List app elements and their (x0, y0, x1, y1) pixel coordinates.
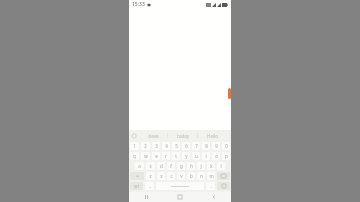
button[interactable]: q (130, 152, 139, 160)
staticText: y (185, 153, 188, 159)
button[interactable]: f (167, 162, 175, 170)
staticText: k (210, 163, 213, 169)
staticText: 4 (165, 143, 168, 149)
staticText: n (200, 173, 203, 179)
button[interactable]: 1 (130, 142, 139, 150)
button[interactable]: 4 (162, 142, 170, 150)
staticText: e (155, 153, 158, 159)
button[interactable]: g (177, 162, 185, 170)
button[interactable]: e (152, 152, 160, 160)
staticText: 3 (155, 143, 158, 149)
staticText: j (200, 163, 202, 169)
button[interactable]: v (177, 172, 185, 180)
staticText: today (177, 133, 189, 139)
staticText: Hello (207, 133, 218, 139)
staticText: t (175, 153, 177, 159)
button[interactable]: l (217, 162, 225, 170)
button[interactable]: r (162, 152, 170, 160)
staticText: 0 (225, 143, 228, 149)
button[interactable]: z (146, 172, 155, 180)
staticText: o (215, 153, 218, 159)
button[interactable]: h (187, 162, 195, 170)
staticText: , (149, 183, 151, 189)
button[interactable]: k (207, 162, 215, 170)
button[interactable]: s (146, 162, 155, 170)
button[interactable]: o (212, 152, 220, 160)
staticText: 5 (175, 143, 178, 149)
button[interactable]: 5 (172, 142, 180, 150)
button[interactable]: w (141, 152, 150, 160)
staticText: s (149, 163, 152, 169)
button[interactable]: Back (197, 192, 231, 202)
staticText: 9 (215, 143, 218, 149)
staticText: v (180, 173, 183, 179)
button[interactable]: Home (163, 192, 197, 202)
button[interactable]: Recents (129, 192, 163, 202)
button[interactable]: Hello (198, 130, 227, 141)
staticText: f (170, 163, 172, 169)
staticText: 7 (195, 143, 198, 149)
staticText: 6 (185, 143, 188, 149)
button[interactable]: 6 (182, 142, 190, 150)
staticText: 15:33 (132, 1, 145, 8)
button[interactable]: Shift (130, 172, 144, 180)
button[interactable]: 9 (212, 142, 220, 150)
button[interactable]: 2 (141, 142, 150, 150)
staticText: . (210, 183, 212, 189)
button[interactable]: 0 (222, 142, 230, 150)
staticText: p (225, 153, 228, 159)
staticText: r (165, 153, 167, 159)
staticText: l (220, 163, 222, 169)
button[interactable]: m (207, 172, 215, 180)
button[interactable]: Backspace (217, 172, 230, 180)
staticText: !#1 (134, 184, 140, 189)
staticText: i (205, 153, 207, 159)
button[interactable]: have (139, 130, 167, 141)
staticText: w (144, 153, 148, 159)
button[interactable]: i (202, 152, 210, 160)
staticText: u (195, 153, 198, 159)
staticText: b (190, 173, 193, 179)
button[interactable]: !#1 (130, 182, 143, 190)
button[interactable]: p (222, 152, 230, 160)
staticText: g (180, 163, 183, 169)
button[interactable]: c (167, 172, 175, 180)
staticText: 1 (133, 143, 136, 149)
staticText: z (149, 173, 152, 179)
staticText: d (160, 163, 163, 169)
button[interactable]: 3 (152, 142, 160, 150)
button[interactable]: d (157, 162, 165, 170)
staticText: a (138, 163, 141, 169)
button[interactable]: . (206, 182, 215, 190)
button[interactable]: a (135, 162, 144, 170)
button[interactable]: today (168, 130, 197, 141)
button[interactable]: , (145, 182, 154, 190)
staticText: 2 (144, 143, 147, 149)
staticText: 8 (205, 143, 208, 149)
button[interactable]: y (182, 152, 190, 160)
staticText: m (209, 173, 214, 179)
button[interactable]: u (192, 152, 200, 160)
button[interactable]: x (157, 172, 165, 180)
staticText: have (148, 133, 159, 139)
button[interactable]: b (187, 172, 195, 180)
button[interactable]: n (197, 172, 205, 180)
staticText: h (190, 163, 193, 169)
button[interactable]: t (172, 152, 180, 160)
button[interactable]: 7 (192, 142, 200, 150)
button[interactable]: 8 (202, 142, 210, 150)
button[interactable]: j (197, 162, 205, 170)
staticText: x (160, 173, 163, 179)
button[interactable]: Enter (217, 182, 230, 190)
staticText: q (133, 153, 136, 159)
button[interactable]: Space (156, 182, 204, 190)
button[interactable]: Voice input (129, 130, 139, 141)
staticText: c (170, 173, 173, 179)
